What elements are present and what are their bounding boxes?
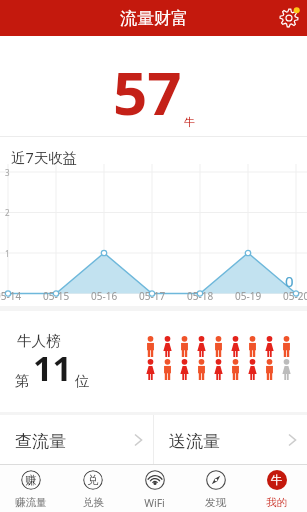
button[interactable]: 发现 (185, 465, 246, 512)
staticText: 我的 (266, 496, 287, 509)
button[interactable]: WiFi (124, 465, 185, 512)
staticText: 赚流量 (15, 496, 47, 509)
button[interactable]: 兑 (62, 465, 124, 512)
button[interactable]: 查流量 (0, 415, 153, 464)
staticText: 查流量 (15, 431, 66, 452)
staticText: 近7天收益 (11, 147, 78, 167)
staticText: WiFi (144, 496, 165, 510)
staticText: 05-18 (187, 289, 214, 303)
staticText: 57 (113, 51, 182, 133)
staticText: 11 (33, 345, 72, 391)
staticText: 牛 (184, 115, 195, 129)
staticText: 05-16 (91, 289, 118, 303)
staticText: 05-20 (283, 289, 307, 303)
staticText: 送流量 (169, 431, 220, 452)
button[interactable]: 赚 (0, 465, 62, 512)
staticText: 流量财富 (120, 8, 188, 29)
button[interactable]: 送流量 (154, 415, 307, 464)
staticText: 发现 (205, 496, 226, 509)
staticText: 赚 (25, 473, 37, 487)
staticText: 05-17 (139, 289, 166, 303)
staticText: 牛人榜 (17, 332, 61, 350)
staticText: 0 (285, 271, 294, 291)
button[interactable]: Settings (276, 5, 302, 31)
staticText: 05-19 (235, 289, 262, 303)
staticText: 05-15 (43, 289, 70, 303)
staticText: 第 (15, 372, 30, 390)
staticText: 兑换 (83, 496, 104, 509)
button[interactable]: 牛 (246, 465, 307, 512)
staticText: 3 (5, 167, 10, 178)
staticText: 05-14 (0, 289, 22, 303)
staticText: 位 (75, 372, 90, 390)
staticText: 1 (5, 248, 10, 259)
staticText: 2 (5, 207, 10, 218)
staticText: 兑 (87, 473, 99, 487)
staticText: 牛 (271, 473, 283, 487)
